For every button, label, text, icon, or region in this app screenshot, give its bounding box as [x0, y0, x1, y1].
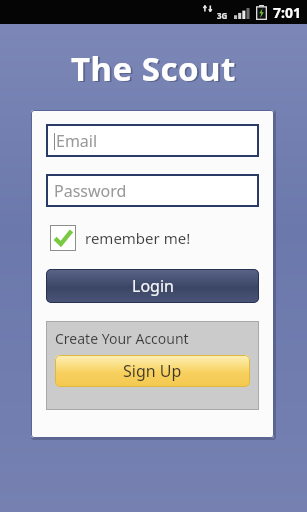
staticText: Create Your Account: [55, 329, 189, 348]
staticText: Login: [132, 275, 174, 297]
staticText: Email: [56, 130, 98, 152]
staticText: The Scout: [71, 46, 236, 91]
button[interactable]: Email: [46, 124, 259, 157]
staticText: Sign Up: [123, 360, 182, 382]
staticText: remember me!: [85, 228, 191, 248]
button[interactable]: remember me!: [46, 223, 195, 253]
button[interactable]: Sign Up: [55, 355, 250, 387]
button[interactable]: Login: [46, 269, 259, 303]
staticText: The Scout: [73, 47, 238, 92]
button[interactable]: Password: [46, 174, 259, 207]
staticText: 3G: [217, 10, 228, 21]
staticText: Password: [54, 180, 127, 202]
staticText: 7:01: [273, 3, 301, 22]
